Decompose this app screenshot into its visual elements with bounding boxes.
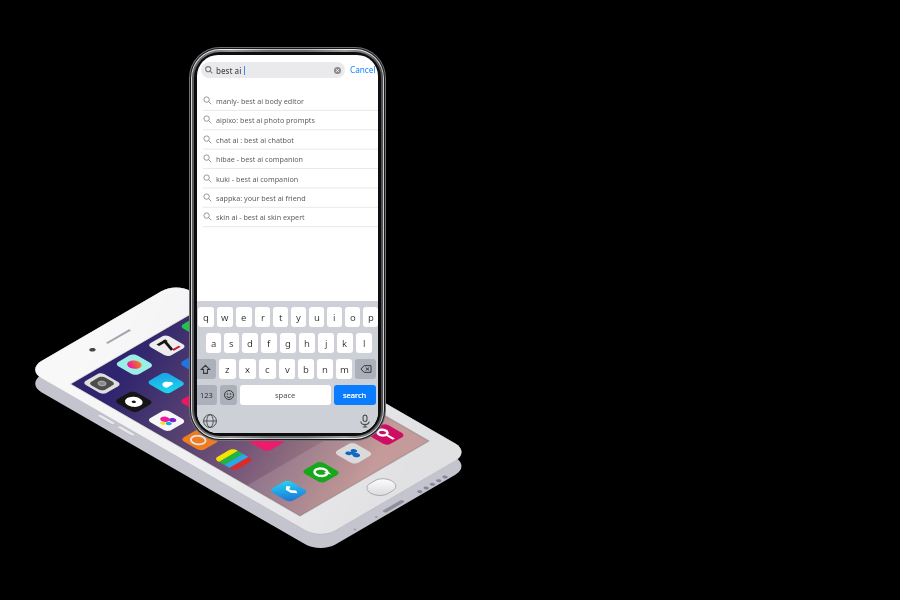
staticText: sappka: your best ai friend (216, 193, 306, 203)
staticText: m (340, 363, 349, 376)
button[interactable]: Change keyboard (203, 414, 217, 428)
button[interactable]: chat ai : best ai chatbot (197, 130, 378, 149)
staticText: kuki - best ai companion (216, 174, 299, 184)
staticText: f (267, 337, 271, 350)
button[interactable]: e (236, 307, 252, 327)
staticText: d (247, 337, 253, 350)
button[interactable]: u (309, 307, 324, 327)
button[interactable]: m (336, 359, 352, 379)
staticText: z (225, 363, 230, 376)
button[interactable]: x (239, 359, 256, 379)
button[interactable]: g (280, 333, 296, 353)
button[interactable]: y (291, 307, 306, 327)
button[interactable]: search (334, 385, 376, 405)
button[interactable]: z (219, 359, 236, 379)
staticText: o (350, 311, 356, 324)
button[interactable]: b (298, 359, 314, 379)
staticText: manly- best ai body editor (216, 96, 304, 106)
staticText: l (363, 337, 366, 350)
staticText: j (325, 337, 328, 350)
button[interactable]: Shift (197, 359, 216, 379)
button[interactable]: Dictate (358, 414, 372, 428)
button[interactable]: i (327, 307, 342, 327)
staticText: w (221, 311, 229, 324)
staticText: y (296, 311, 301, 324)
staticText: search (343, 390, 367, 400)
button[interactable]: l (356, 333, 372, 353)
staticText: aipixo: best ai photo prompts (216, 115, 315, 125)
button[interactable]: Cancel (350, 62, 377, 75)
staticText: v (285, 363, 290, 376)
staticText: q (203, 311, 209, 324)
button[interactable]: p (363, 307, 378, 327)
button[interactable]: v (279, 359, 295, 379)
other: Clear text (334, 67, 341, 74)
button[interactable]: hibae - best ai companion (197, 149, 378, 168)
staticText: Cancel (350, 64, 376, 75)
button[interactable]: c (259, 359, 276, 379)
button[interactable]: sappka: your best ai friend (197, 188, 378, 207)
button[interactable]: aipixo: best ai photo prompts (197, 110, 378, 129)
button[interactable]: t (273, 307, 288, 327)
button[interactable]: a (206, 333, 221, 353)
button[interactable]: r (255, 307, 270, 327)
button[interactable]: space (240, 385, 331, 405)
staticText: i (333, 311, 336, 324)
button[interactable]: best ai (201, 62, 345, 78)
button[interactable]: f (261, 333, 277, 353)
button[interactable]: Emoji (220, 385, 237, 405)
button[interactable]: Backspace (355, 359, 376, 379)
button[interactable]: o (345, 307, 360, 327)
staticText: n (322, 363, 328, 376)
staticText: best ai (216, 65, 242, 76)
staticText: g (285, 337, 291, 350)
staticText: 123 (200, 390, 213, 400)
button[interactable]: q (198, 307, 214, 327)
staticText: space (275, 390, 296, 400)
button[interactable]: 123 (197, 385, 217, 405)
staticText: a (211, 337, 217, 350)
button[interactable]: d (242, 333, 258, 353)
staticText: r (261, 311, 265, 324)
button[interactable]: s (224, 333, 239, 353)
staticText: h (304, 337, 310, 350)
button[interactable]: k (337, 333, 353, 353)
button[interactable]: n (317, 359, 333, 379)
staticText: u (314, 311, 320, 324)
staticText: hibae - best ai companion (216, 154, 304, 164)
button[interactable]: kuki - best ai companion (197, 169, 378, 188)
button[interactable]: j (318, 333, 334, 353)
staticText: e (241, 311, 247, 324)
button[interactable]: skin ai - best ai skin expert (197, 207, 378, 226)
staticText: p (368, 311, 374, 324)
staticText: k (342, 337, 348, 350)
button[interactable]: manly- best ai body editor (197, 91, 378, 110)
button[interactable]: h (299, 333, 315, 353)
button[interactable]: w (217, 307, 233, 327)
staticText: c (265, 363, 270, 376)
staticText: s (229, 337, 234, 350)
staticText: chat ai : best ai chatbot (216, 135, 294, 145)
staticText: b (303, 363, 309, 376)
staticText: t (279, 311, 283, 324)
staticText: x (245, 363, 251, 376)
staticText: skin ai - best ai skin expert (216, 212, 305, 222)
